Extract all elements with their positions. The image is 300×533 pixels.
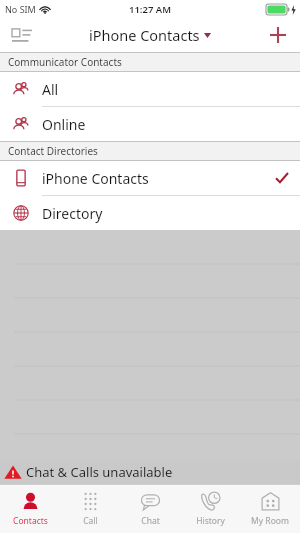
staticText: 11:27 AM <box>129 3 172 16</box>
button[interactable]: Directory <box>0 196 300 230</box>
staticText: No SIM <box>5 3 36 15</box>
button[interactable]: iPhone Contacts <box>89 25 211 45</box>
staticText: Contact Directories <box>8 144 98 158</box>
staticText: Contacts <box>13 515 48 527</box>
button[interactable]: iPhone Contacts <box>0 161 300 195</box>
button[interactable]: Chat <box>120 485 180 533</box>
staticText: History <box>196 515 225 527</box>
button[interactable]: History <box>180 485 240 533</box>
staticText: iPhone Contacts <box>42 169 149 188</box>
staticText: My Room <box>251 515 289 527</box>
button[interactable]: My Room <box>240 485 300 533</box>
staticText: Call <box>83 515 98 527</box>
button[interactable]: Add contact <box>262 20 294 50</box>
button[interactable]: Chat & Calls unavailable <box>0 460 300 484</box>
button[interactable]: All <box>0 72 300 106</box>
staticText: Chat <box>141 515 160 527</box>
staticText: All <box>42 80 59 99</box>
staticText: iPhone Contacts <box>89 25 200 45</box>
button[interactable]: Contacts <box>0 485 60 533</box>
staticText: Communicator Contacts <box>8 55 122 69</box>
button[interactable]: Online <box>0 107 300 141</box>
button[interactable]: Call <box>60 485 120 533</box>
staticText: Directory <box>42 204 103 223</box>
staticText: Chat & Calls unavailable <box>26 463 173 481</box>
staticText: Online <box>42 115 86 134</box>
button[interactable]: Toggle list view <box>6 20 38 50</box>
